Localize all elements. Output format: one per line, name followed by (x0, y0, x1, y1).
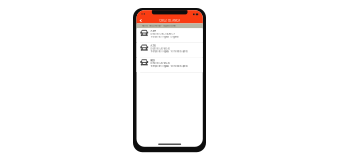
staticText: Tiempo de llegada: Llegando (150, 35, 178, 38)
button[interactable]: A204 (136, 28, 203, 43)
staticText: Destino LAS VEGAS (150, 47, 169, 50)
staticText: 9:41 (141, 13, 145, 15)
button[interactable]: B023 (136, 58, 203, 72)
staticText: RUTA: VOLUNTAD - TELEFUTURA (142, 25, 175, 27)
staticText: Destino LAS VEGAS (150, 62, 169, 65)
button[interactable]: Back (138, 17, 143, 24)
staticText: Tiempo de llegada: 18 minutos aprox. (150, 65, 188, 67)
staticText: A204 (150, 30, 155, 32)
button[interactable]: A215 (136, 43, 203, 57)
staticText: Tiempo de llegada: 10 minutos aprox. (150, 50, 188, 53)
staticText: A215 (150, 44, 155, 47)
staticText: B023 (150, 59, 154, 62)
staticText: Destino CRUZ BLANCA (150, 33, 174, 35)
staticText: CRUZ BLANCA (159, 19, 180, 22)
